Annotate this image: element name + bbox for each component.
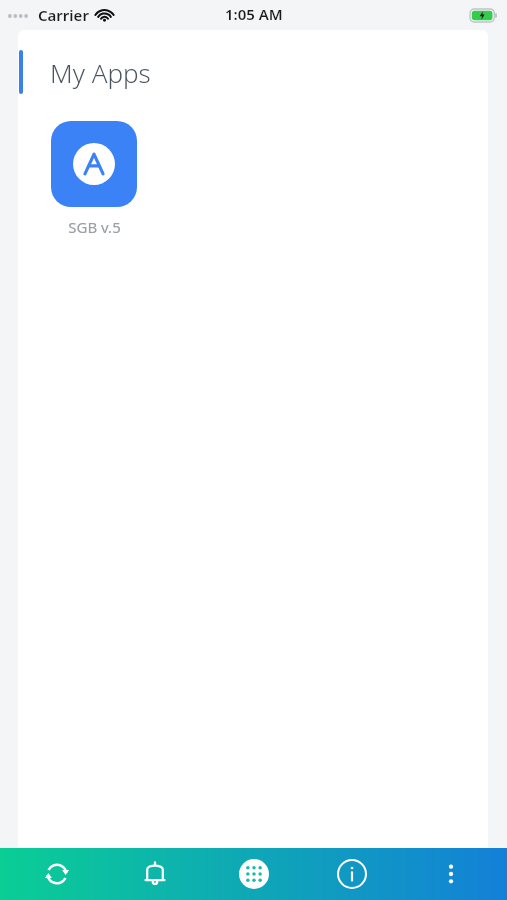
- button[interactable]: SGB v.5: [42, 121, 146, 237]
- button[interactable]: Apps: [212, 848, 296, 900]
- button[interactable]: More options: [409, 848, 493, 900]
- staticText: My Apps: [50, 55, 151, 90]
- button[interactable]: Notifications: [113, 848, 197, 900]
- staticText: SGB v.5: [68, 217, 121, 237]
- button[interactable]: Information: [310, 848, 394, 900]
- staticText: 1:05 AM: [225, 4, 283, 24]
- staticText: Carrier: [38, 5, 89, 25]
- button[interactable]: Refresh: [15, 848, 99, 900]
